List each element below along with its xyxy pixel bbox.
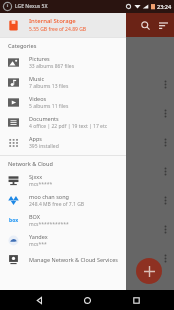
staticText: Music xyxy=(29,75,45,82)
button[interactable]: More options xyxy=(160,137,170,147)
button[interactable]: Back xyxy=(29,290,49,310)
staticText: LGE Nexus 5X xyxy=(15,3,48,10)
staticText: Apps xyxy=(29,135,42,142)
button[interactable]: Recents xyxy=(126,290,146,310)
button[interactable]: Documents xyxy=(0,112,126,132)
staticText: 5.55 GB free of 24.89 GB xyxy=(29,26,87,33)
button[interactable]: Internal Storage xyxy=(0,13,126,37)
staticText: 4 office | 22 pdf | 19 text | 17 etc xyxy=(29,123,108,130)
button[interactable]: Search xyxy=(136,16,154,34)
staticText: 248.4 MB free of 7.1 GB xyxy=(29,201,85,208)
button[interactable]: Pictures xyxy=(0,52,126,72)
button[interactable]: Sjxxx xyxy=(0,170,126,190)
button[interactable]: More options xyxy=(160,166,170,176)
staticText: box xyxy=(9,217,19,224)
staticText: Videos xyxy=(29,95,47,102)
button[interactable]: Add xyxy=(136,258,162,284)
staticText: Network & Cloud xyxy=(8,160,53,167)
button[interactable]: Home xyxy=(77,290,97,310)
staticText: mcs*** xyxy=(29,241,47,248)
staticText: 395 installed xyxy=(29,143,59,150)
button[interactable]: box xyxy=(0,210,126,230)
staticText: 23:24 xyxy=(157,3,172,10)
button[interactable]: More options xyxy=(160,108,170,118)
button[interactable]: Manage Network & Cloud Services xyxy=(0,250,126,268)
staticText: Sjxxx xyxy=(29,173,43,180)
staticText: 5 albums 11 files xyxy=(29,103,69,110)
button[interactable]: Yandex xyxy=(0,230,126,250)
staticText: 7 albums 13 files xyxy=(29,83,69,90)
button[interactable]: Sort xyxy=(154,16,172,34)
staticText: BOX xyxy=(29,213,40,220)
button[interactable]: Videos xyxy=(0,92,126,112)
staticText: mcs***** xyxy=(29,181,53,188)
button[interactable]: moo chan song xyxy=(0,190,126,210)
staticText: moo chan song xyxy=(29,193,69,200)
button[interactable]: More options xyxy=(160,195,170,205)
staticText: mcs*********** xyxy=(29,221,69,228)
staticText: Documents xyxy=(29,115,59,122)
button[interactable]: More options xyxy=(160,253,170,263)
staticText: Internal Storage xyxy=(29,17,76,25)
staticText: 33 albums 867 files xyxy=(29,63,75,70)
staticText: Categories xyxy=(8,42,37,49)
button[interactable]: Music xyxy=(0,72,126,92)
button[interactable]: Apps xyxy=(0,132,126,152)
staticText: Pictures xyxy=(29,55,50,62)
button[interactable]: More options xyxy=(160,224,170,234)
staticText: Yandex xyxy=(29,233,48,240)
staticText: Manage Network & Cloud Services xyxy=(29,256,118,263)
button[interactable]: More options xyxy=(160,79,170,89)
